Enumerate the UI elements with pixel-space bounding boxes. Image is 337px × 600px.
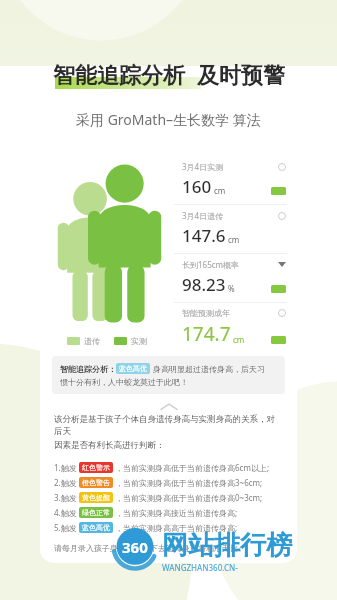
staticText: 3.触发 <box>54 492 77 503</box>
staticText: 智能追踪分析： <box>60 364 116 374</box>
staticText: ，当前实测身高低于当前遗传身高3~6cm; <box>115 477 263 488</box>
staticText: 该分析是基于孩子个体自身遗传身高与实测身高的关系，对后天 <box>54 414 283 436</box>
staticText: 360 <box>122 537 148 557</box>
staticText: 智能预测成年 <box>182 308 230 318</box>
staticText: 蓝色高优 <box>119 364 147 373</box>
staticText: 2.触发 <box>54 477 77 488</box>
staticText: 及时预警 <box>197 62 285 90</box>
staticText: 红色警示 <box>82 463 110 472</box>
other: 说明 <box>278 212 286 220</box>
other: 说明 <box>278 309 286 317</box>
staticText: 98.23 <box>182 273 226 296</box>
staticText: cm <box>233 334 245 345</box>
button[interactable]: 3月4日遗传 <box>174 205 287 253</box>
staticText: 174.7 <box>182 321 231 347</box>
staticText: % <box>228 283 235 294</box>
staticText: 遗传 <box>84 336 100 346</box>
staticText: 1.触发 <box>54 462 77 473</box>
staticText: 4.触发 <box>54 507 77 518</box>
staticText: WANGZHAN360.CN- <box>162 562 238 573</box>
staticText: 长到165cm概率 <box>182 259 240 270</box>
staticText: ，当前实测身高高于当前遗传身高; <box>115 522 238 533</box>
staticText: 147.6 <box>182 224 226 247</box>
staticText: 请每月录入孩子身高，坚持下去遗传身高将精准无比。 <box>54 543 246 553</box>
staticText: ，当前实测身高低于当前遗传身高0~3cm; <box>115 492 263 503</box>
staticText: 橙色警告 <box>82 478 110 487</box>
button[interactable]: 智能预测成年 <box>174 303 287 351</box>
staticText: 网站排行榜 <box>162 529 292 562</box>
staticText: 3月4日遗传 <box>182 210 224 221</box>
staticText: 黄色提醒 <box>82 493 110 502</box>
staticText: 惯十分有利，人中蛟龙莫过于此吧！ <box>60 377 188 387</box>
staticText: 蓝色高优 <box>82 523 110 532</box>
staticText: cm <box>214 185 226 196</box>
staticText: ，当前实测身高低于当前遗传身高6cm以上; <box>115 462 270 473</box>
staticText: ，当前实测身高接近当前遗传身高; <box>115 507 238 518</box>
staticText: 160 <box>182 175 212 198</box>
staticText: cm <box>228 234 240 245</box>
button[interactable]: 收起 <box>40 400 297 414</box>
staticText: 实测 <box>131 336 147 346</box>
other: 说明 <box>278 163 286 171</box>
button[interactable]: 长到165cm概率 <box>174 254 287 302</box>
staticText: 因素是否有利长高进行判断： <box>54 440 165 451</box>
staticText: 身高明显超过遗传身高，后天习 <box>153 364 265 374</box>
button[interactable]: 3月4日实测 <box>174 156 287 204</box>
staticText: 采用 GroMath–生长数学 算法 <box>76 110 261 129</box>
staticText: 5.触发 <box>54 522 77 533</box>
staticText: 智能追踪分析 <box>53 62 185 90</box>
button[interactable]: 智能追踪分析： <box>52 356 285 394</box>
staticText: 3月4日实测 <box>182 161 224 172</box>
staticText: 绿色正常 <box>82 508 110 517</box>
